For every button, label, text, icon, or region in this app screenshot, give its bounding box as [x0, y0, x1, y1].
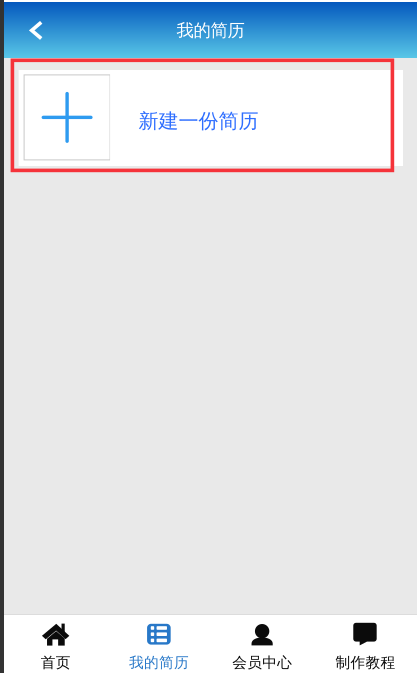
staticText: 我的简历 — [176, 20, 244, 41]
staticText: 首页 — [41, 653, 71, 672]
button[interactable]: 我的简历 — [107, 615, 210, 673]
staticText: 会员中心 — [232, 653, 292, 672]
button[interactable]: 新建一份简历 — [19, 70, 403, 166]
staticText: 新建一份简历 — [138, 108, 258, 134]
staticText: 制作教程 — [335, 653, 395, 672]
button[interactable]: Back — [4, 2, 52, 58]
button[interactable]: 首页 — [4, 615, 107, 673]
button[interactable]: 制作教程 — [314, 615, 417, 673]
button[interactable]: 会员中心 — [210, 615, 314, 673]
staticText: 我的简历 — [129, 653, 189, 672]
